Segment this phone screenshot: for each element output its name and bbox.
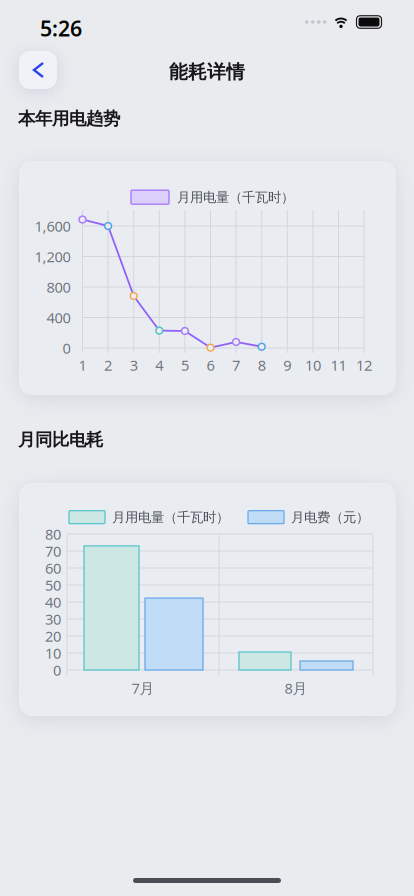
staticText: 5	[181, 355, 189, 375]
staticText: 20	[45, 626, 61, 646]
staticText: 400	[46, 308, 70, 327]
staticText: 70	[45, 541, 61, 561]
staticText: 9	[283, 355, 291, 375]
staticText: 11	[330, 355, 346, 375]
staticText: 1,200	[34, 247, 70, 266]
staticText: 4	[155, 355, 163, 375]
staticText: 800	[46, 277, 70, 297]
staticText: 1,600	[34, 216, 70, 236]
staticText: 月用电量（千瓦时）	[112, 509, 229, 525]
staticText: 3	[130, 355, 138, 375]
staticText: 8	[258, 355, 266, 375]
staticText: 7月	[131, 678, 154, 698]
button[interactable]: Back	[19, 51, 57, 89]
staticText: 1	[78, 355, 86, 375]
staticText: 2	[104, 355, 112, 375]
staticText: 0	[53, 660, 61, 680]
staticText: 月用电量（千瓦时）	[177, 189, 294, 205]
staticText: 10	[305, 355, 321, 375]
staticText: 本年用电趋势	[18, 108, 120, 129]
staticText: 月同比电耗	[18, 429, 103, 450]
staticText: 60	[45, 558, 61, 578]
staticText: 40	[45, 592, 61, 612]
staticText: 月电费（元）	[291, 509, 369, 525]
staticText: 50	[45, 575, 61, 595]
staticText: 10	[45, 643, 61, 663]
staticText: 30	[45, 609, 61, 629]
staticText: 12	[356, 355, 372, 375]
staticText: 7	[232, 355, 240, 375]
staticText: 8月	[284, 678, 307, 698]
staticText: 80	[45, 524, 61, 544]
staticText: 能耗详情	[169, 60, 245, 83]
staticText: 5:26	[40, 14, 82, 42]
staticText: 0	[62, 338, 70, 358]
staticText: 6	[206, 355, 214, 375]
